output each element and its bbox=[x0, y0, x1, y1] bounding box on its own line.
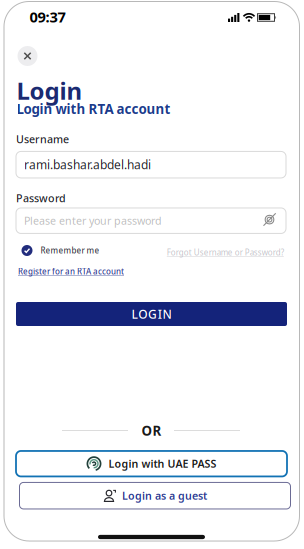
staticText: Login with UAE PASS bbox=[108, 457, 216, 471]
button[interactable]: Show password bbox=[261, 212, 277, 226]
button[interactable]: Register for an RTA account bbox=[18, 266, 124, 277]
button[interactable]: LOGIN bbox=[16, 302, 287, 326]
button[interactable]: Remember me bbox=[21, 245, 99, 256]
staticText: Remember me bbox=[40, 245, 99, 256]
button[interactable]: Forgot Username or Password? bbox=[167, 247, 284, 258]
staticText: Username bbox=[16, 132, 69, 146]
staticText: Login as a guest bbox=[122, 489, 207, 503]
staticText: Please enter your password bbox=[24, 214, 162, 228]
staticText: OR bbox=[141, 422, 161, 439]
button[interactable]: Login with UAE PASS bbox=[16, 451, 287, 476]
button[interactable]: Close bbox=[17, 46, 37, 66]
staticText: LOGIN bbox=[131, 306, 172, 322]
staticText: Password bbox=[16, 191, 66, 205]
staticText: Register for an RTA account bbox=[18, 266, 124, 277]
staticText: Forgot Username or Password? bbox=[167, 247, 284, 258]
staticText: 09:37 bbox=[29, 7, 65, 27]
staticText: Login bbox=[16, 75, 82, 106]
staticText: rami.bashar.abdel.hadi bbox=[24, 157, 151, 173]
button[interactable]: Login as a guest bbox=[19, 482, 290, 509]
staticText: Login with RTA account bbox=[16, 100, 170, 118]
